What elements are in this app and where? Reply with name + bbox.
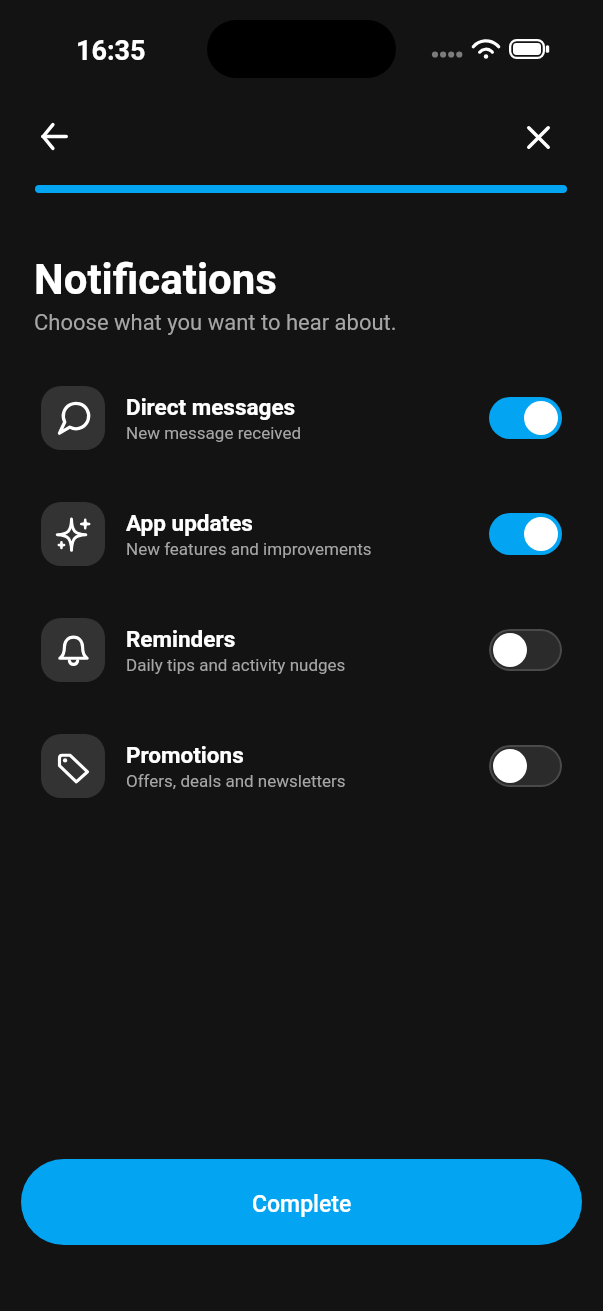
button[interactable]: Toggle Reminders (489, 629, 562, 671)
staticText: New features and improvements (126, 539, 372, 559)
button[interactable]: App updates (41, 502, 562, 566)
button[interactable]: Toggle Promotions (489, 745, 562, 787)
button[interactable]: Promotions (41, 734, 562, 798)
staticText: Offers, deals and newsletters (126, 771, 346, 791)
staticText: Notifications (34, 255, 277, 304)
button[interactable]: Back (29, 111, 79, 161)
button[interactable]: Toggle Direct messages (489, 397, 562, 439)
staticText: Direct messages (126, 394, 296, 420)
staticText: Promotions (126, 742, 244, 768)
staticText: Complete (252, 1191, 352, 1218)
button[interactable]: Direct messages (41, 386, 562, 450)
staticText: Choose what you want to hear about. (34, 310, 397, 336)
staticText: Reminders (126, 626, 236, 652)
button[interactable]: Close (513, 112, 563, 162)
staticText: New message received (126, 423, 302, 443)
button[interactable]: Complete (21, 1159, 582, 1245)
staticText: Daily tips and activity nudges (126, 655, 346, 675)
button[interactable]: Reminders (41, 618, 562, 682)
staticText: 16:35 (76, 35, 146, 67)
button[interactable]: Toggle App updates (489, 513, 562, 555)
staticText: App updates (126, 510, 253, 536)
